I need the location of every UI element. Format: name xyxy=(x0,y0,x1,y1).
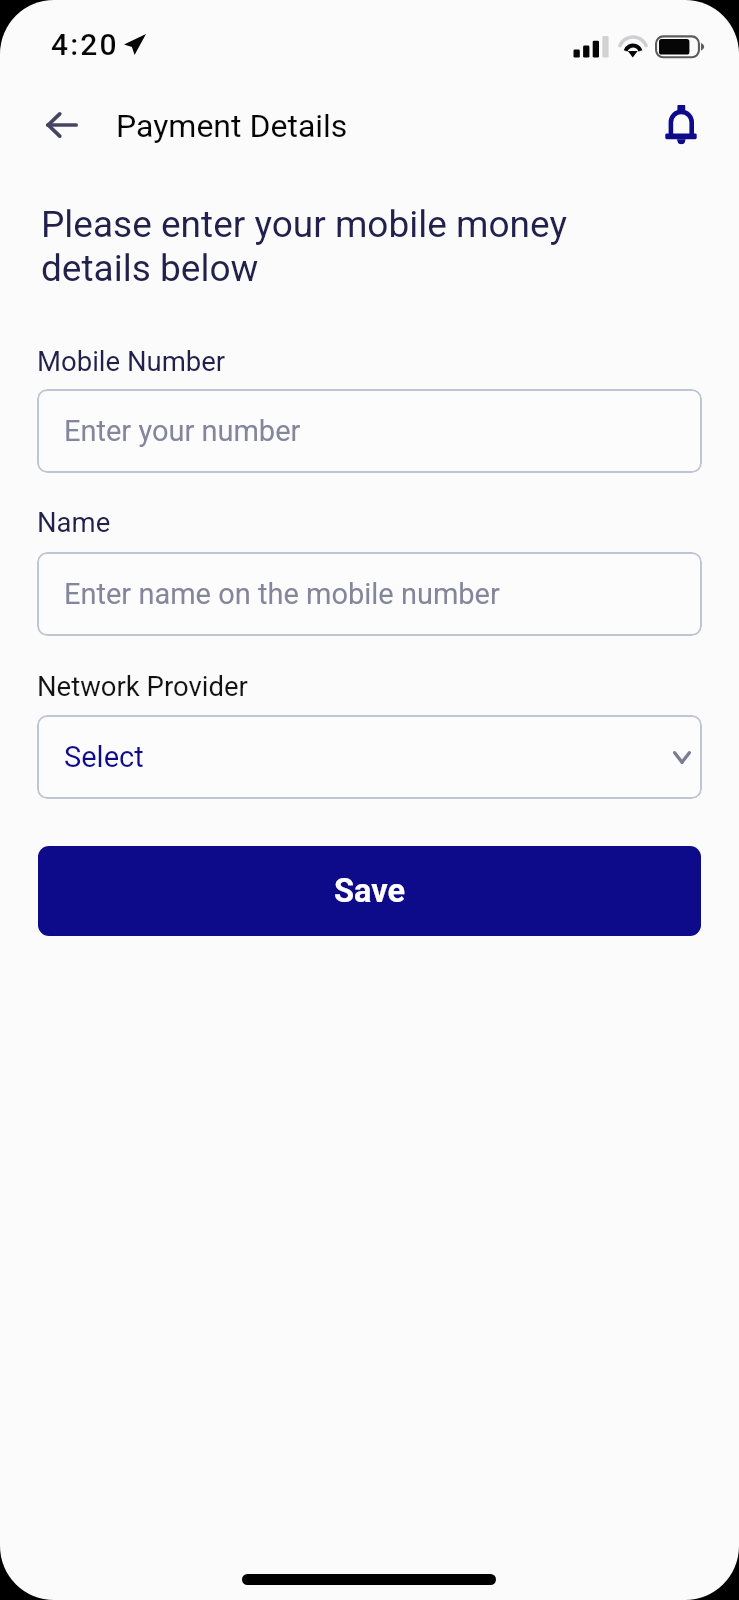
staticText: Save xyxy=(334,872,405,910)
staticText: Payment Details xyxy=(116,107,348,145)
staticText: Select xyxy=(64,740,144,774)
button[interactable]: Enter name on the mobile number xyxy=(37,552,702,636)
button[interactable]: Notifications xyxy=(651,95,711,155)
staticText: Enter your number xyxy=(64,414,301,448)
button[interactable]: Back xyxy=(32,95,92,155)
button[interactable]: Save xyxy=(38,846,701,936)
staticText: Network Provider xyxy=(37,670,248,702)
staticText: Enter name on the mobile number xyxy=(64,577,500,611)
button[interactable]: Select xyxy=(37,715,702,799)
staticText: Name xyxy=(37,506,111,538)
staticText: 4:20 xyxy=(51,27,119,62)
staticText: Mobile Number xyxy=(37,345,226,377)
staticText: Please enter your mobile money details b… xyxy=(41,203,601,290)
button[interactable]: Enter your number xyxy=(37,389,702,473)
